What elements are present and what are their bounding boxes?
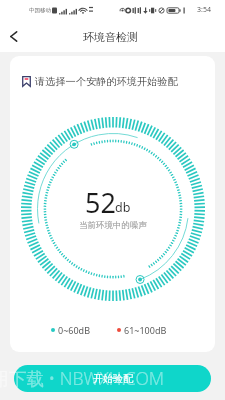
staticText: 当前环境中的噪声 xyxy=(79,220,147,231)
staticText: 应用下载 • NBWXH.COM xyxy=(0,366,165,390)
staticText: 0~60dB xyxy=(58,324,90,336)
staticText: 请选择一个安静的环境开始验配 xyxy=(35,75,178,88)
staticText: 3:54 xyxy=(197,5,211,15)
staticText: 61~100dB xyxy=(124,324,167,336)
staticText: db xyxy=(115,199,131,216)
button[interactable]: 开始验配 xyxy=(14,365,211,392)
staticText: 开始验配 xyxy=(93,372,133,385)
staticText: 中国移动 xyxy=(29,7,51,14)
staticText: 环境音检测 xyxy=(83,30,138,44)
staticText: 52 xyxy=(85,184,116,221)
button[interactable]: 返回 xyxy=(0,23,26,49)
